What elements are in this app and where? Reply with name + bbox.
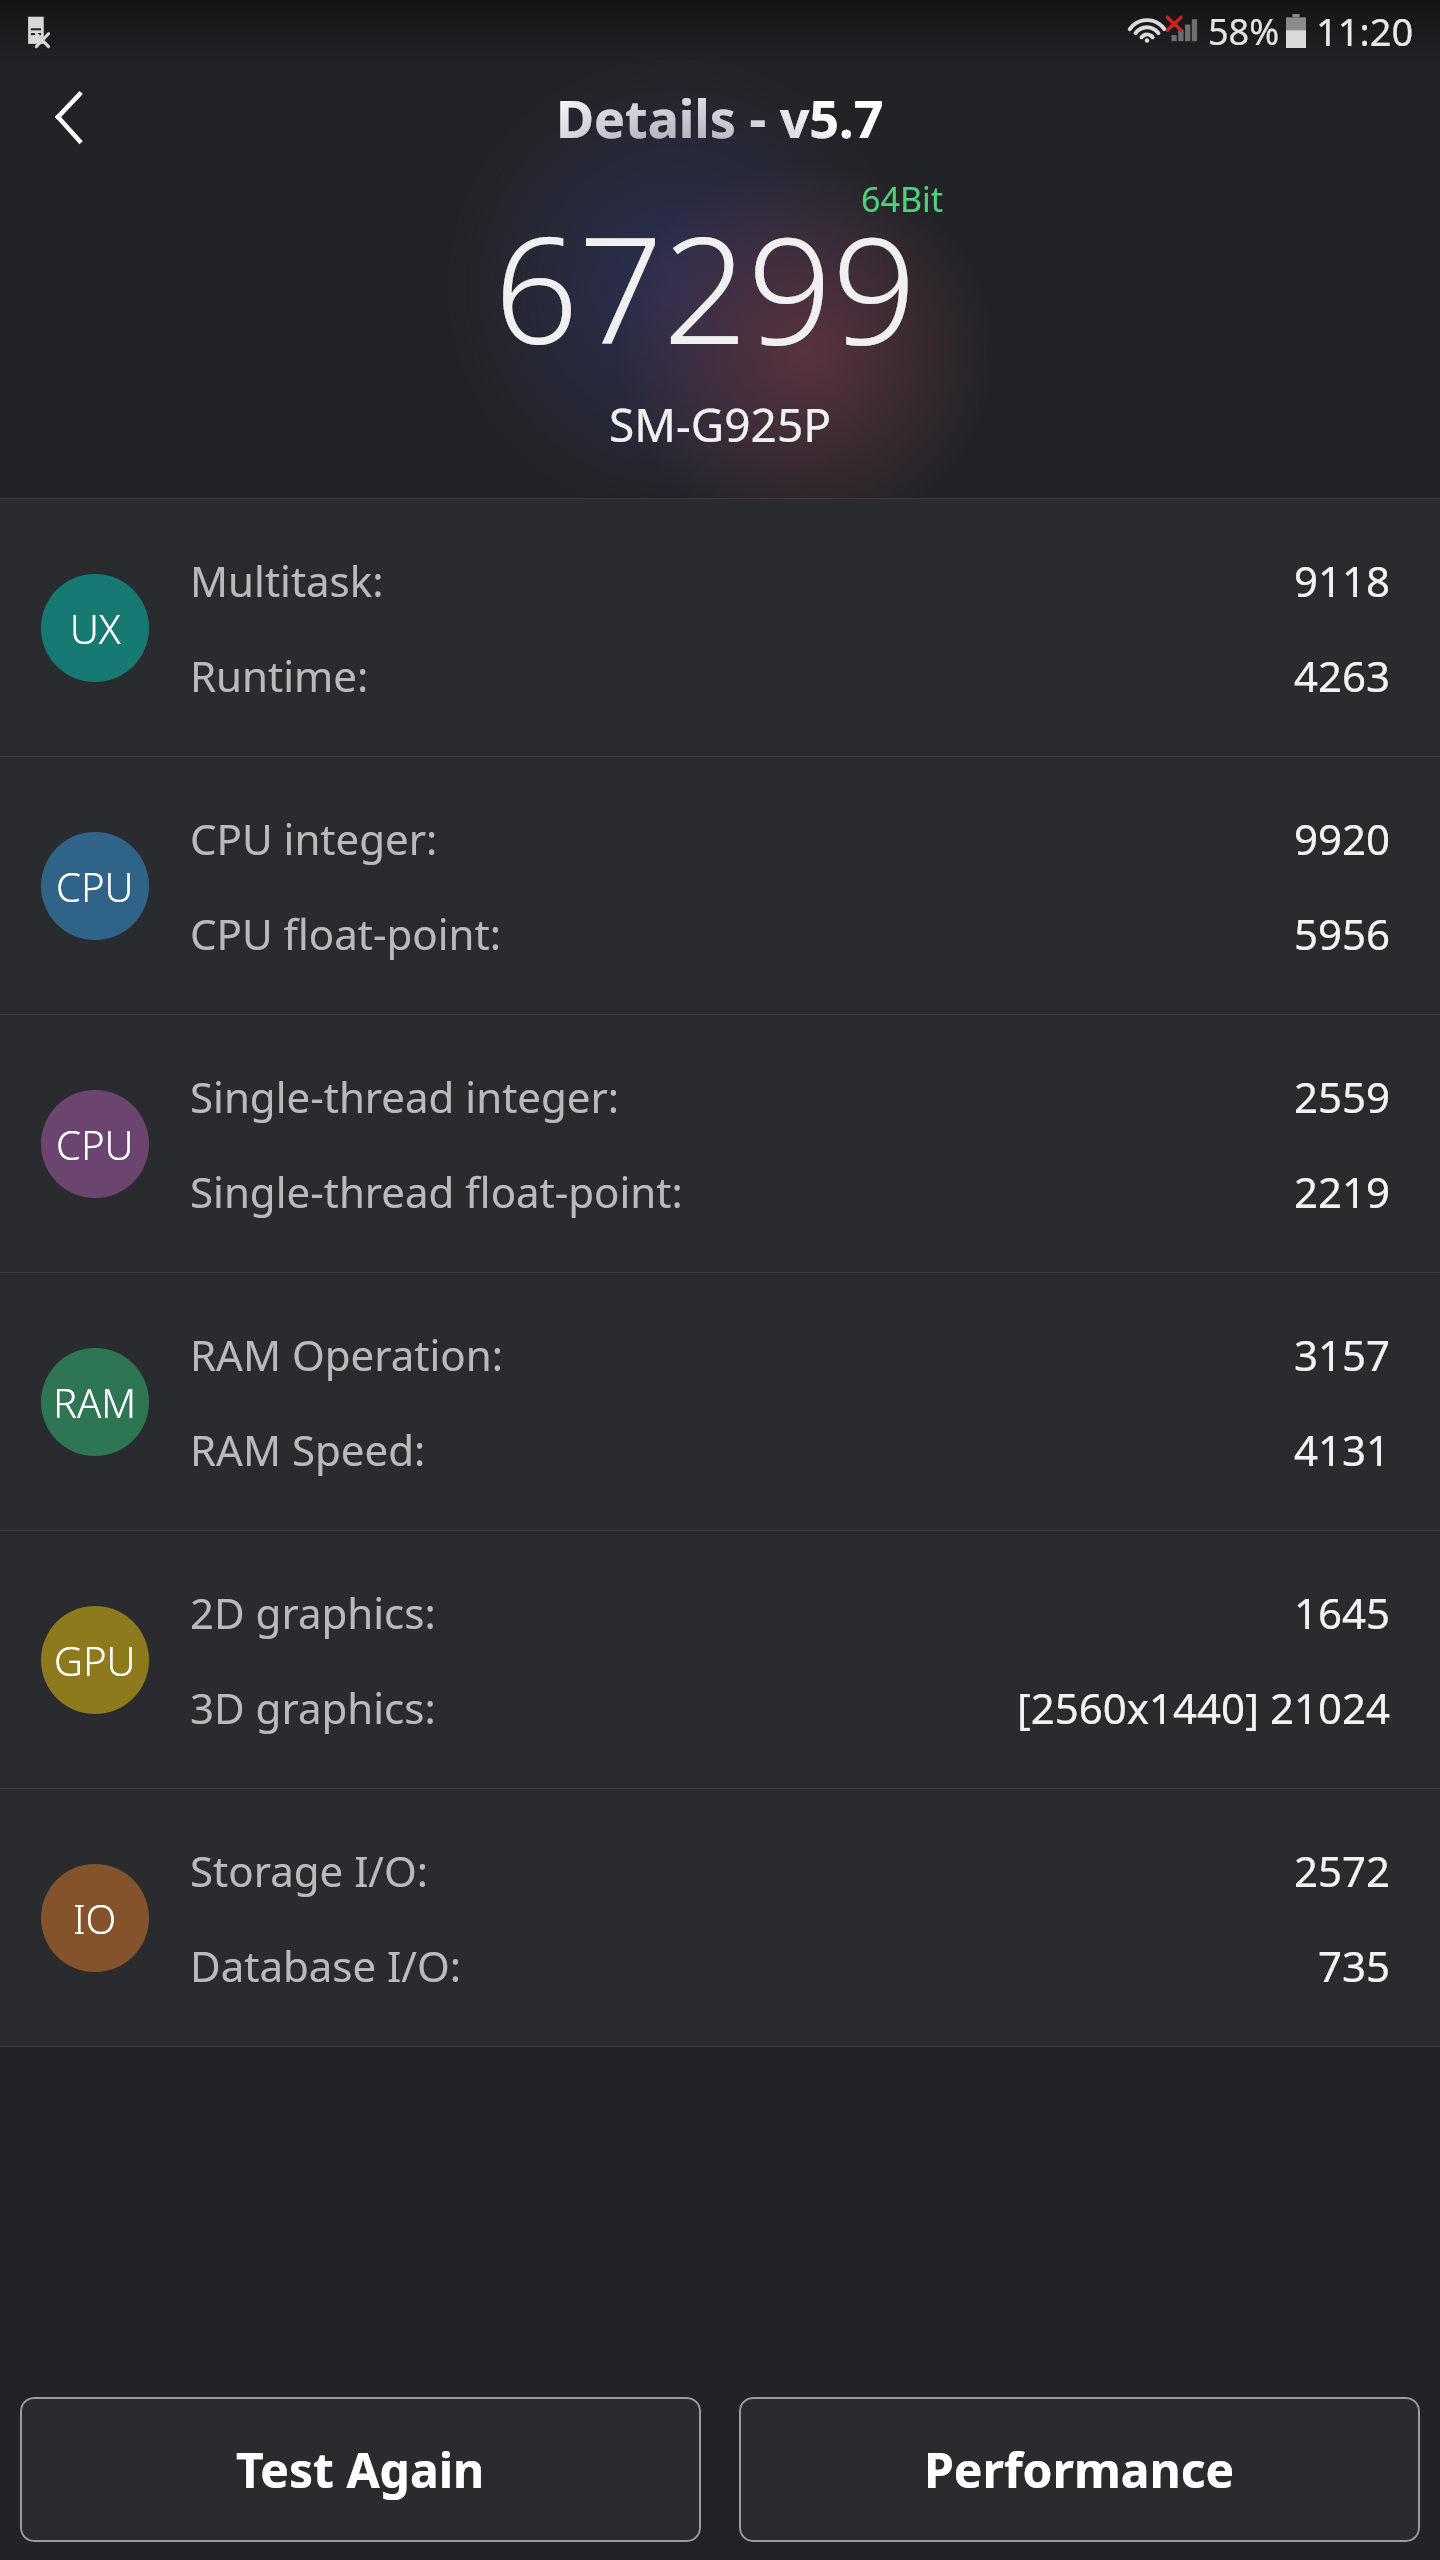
staticText: 67299 bbox=[494, 186, 917, 376]
staticText: Database I/O: bbox=[190, 1937, 461, 1994]
button[interactable]: Test Again bbox=[20, 2397, 701, 2542]
staticText: RAM Operation: bbox=[190, 1326, 503, 1383]
staticText: Details - v5.7 bbox=[556, 82, 884, 153]
staticText: CPU bbox=[56, 859, 134, 913]
staticText: 3157 bbox=[1293, 1326, 1390, 1383]
button[interactable]: UX bbox=[0, 499, 1440, 756]
staticText: Runtime: bbox=[190, 647, 369, 704]
button[interactable]: GPU bbox=[0, 1531, 1440, 1788]
staticText: 1645 bbox=[1293, 1584, 1390, 1641]
button[interactable]: RAM bbox=[0, 1273, 1440, 1530]
staticText: UX bbox=[70, 601, 121, 655]
staticText: 9118 bbox=[1293, 552, 1390, 609]
staticText: CPU bbox=[56, 1117, 134, 1171]
staticText: 735 bbox=[1317, 1937, 1390, 1994]
staticText: 2572 bbox=[1293, 1842, 1390, 1899]
staticText: RAM Speed: bbox=[190, 1421, 426, 1478]
staticText: Multitask: bbox=[190, 552, 384, 609]
staticText: CPU float-point: bbox=[190, 905, 501, 962]
staticText: Test Again bbox=[236, 2437, 485, 2502]
staticText: IO bbox=[73, 1891, 117, 1945]
staticText: Single-thread integer: bbox=[190, 1068, 620, 1125]
staticText: 11:20 bbox=[1316, 5, 1414, 57]
staticText: GPU bbox=[54, 1633, 136, 1687]
staticText: Single-thread float-point: bbox=[190, 1163, 683, 1220]
staticText: 3D graphics: bbox=[190, 1679, 436, 1736]
staticText: RAM bbox=[53, 1375, 137, 1429]
staticText: 9920 bbox=[1293, 810, 1390, 867]
staticText: 4131 bbox=[1293, 1421, 1390, 1478]
button[interactable]: Back bbox=[28, 75, 112, 159]
staticText: 64Bit bbox=[861, 176, 944, 222]
staticText: 2219 bbox=[1293, 1163, 1390, 1220]
staticText: Storage I/O: bbox=[190, 1842, 429, 1899]
button[interactable]: Performance bbox=[739, 2397, 1420, 2542]
staticText: 2D graphics: bbox=[190, 1584, 436, 1641]
staticText: 58% bbox=[1208, 7, 1280, 56]
staticText: 2559 bbox=[1293, 1068, 1390, 1125]
staticText: SM-G925P bbox=[609, 393, 832, 456]
staticText: [2560x1440] 21024 bbox=[1016, 1679, 1390, 1736]
staticText: 4263 bbox=[1293, 647, 1390, 704]
button[interactable]: CPU bbox=[0, 757, 1440, 1014]
staticText: Performance bbox=[924, 2437, 1235, 2502]
button[interactable]: IO bbox=[0, 1789, 1440, 2046]
staticText: CPU integer: bbox=[190, 810, 438, 867]
button[interactable]: CPU bbox=[0, 1015, 1440, 1272]
staticText: 5956 bbox=[1293, 905, 1390, 962]
